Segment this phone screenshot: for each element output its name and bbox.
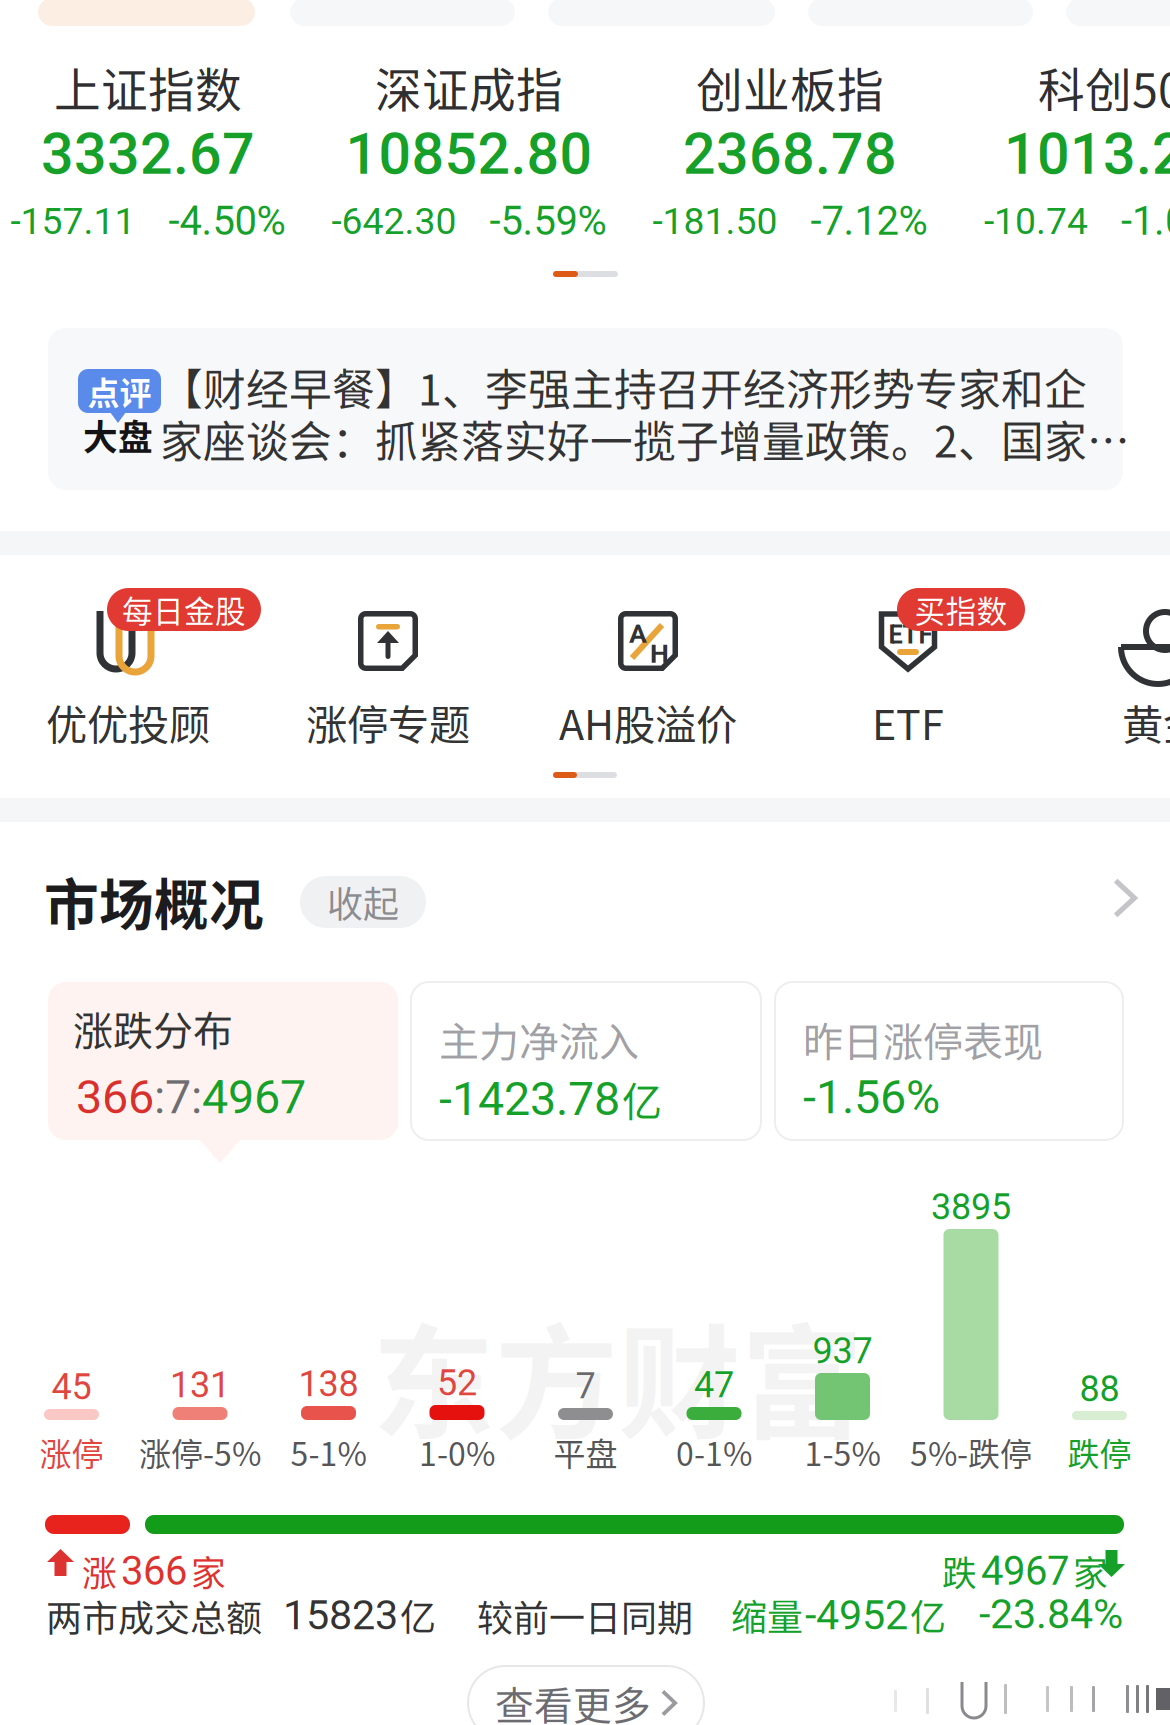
staticText: -157.11 [10,199,135,243]
staticText: 查看更多 [495,1675,651,1725]
staticText: AH股溢价 [559,692,737,752]
staticText: 主力净流入 [439,1010,639,1068]
staticText: 平盘 [553,1429,617,1475]
button[interactable]: ETF [758,570,1058,760]
staticText: 3895 [931,1186,1011,1228]
staticText: 【财经早餐】1、李强主持召开经济形势专家和企 [160,356,1087,418]
button[interactable]: 展开市场概况 [1097,870,1153,926]
staticText: 家座谈会：抓紧落实好一揽子增量政策。2、国家… [160,408,1130,470]
button[interactable]: 主力净流入 [411,982,761,1140]
staticText: 3332.67 [41,121,255,188]
button[interactable]: A [498,570,798,760]
staticText: 5-1% [290,1429,366,1475]
staticText: -1423.78 [439,1072,620,1126]
staticText: 47 [694,1364,734,1406]
staticText: 黄金 [1122,692,1170,752]
staticText: 市场概况 [44,861,264,940]
staticText: -4952 [805,1591,908,1639]
staticText: 优优投顾 [46,692,210,752]
staticText: 亿 [400,1589,436,1641]
button[interactable]: 科创50 [950,53,1170,233]
staticText: 涨停 [39,1429,103,1475]
button[interactable]: 点评 [48,328,1123,490]
staticText: 1-5% [804,1429,880,1475]
staticText: 大盘 [83,410,153,460]
staticText: 138 [298,1363,358,1405]
staticText: 较前一日同期 [477,1590,693,1642]
staticText: 东方财富 [372,1286,864,1464]
staticText: 家 [191,1546,226,1596]
staticText: 937 [812,1330,872,1372]
staticText: 深证成指 [375,53,563,121]
button[interactable]: 自选板块 [38,0,255,26]
staticText: 每日金股 [122,587,246,632]
staticText: 涨停-5% [139,1429,261,1475]
button[interactable]: 上证指数 [0,53,308,233]
button[interactable]: 创业板指 [629,53,950,233]
staticText: 1013.24 [1004,121,1170,188]
staticText: 亿 [910,1589,946,1641]
staticText: 366 [121,1548,187,1595]
staticText: 131 [170,1364,230,1406]
staticText: -10.74 [984,199,1088,243]
staticText: ETF [888,620,932,650]
button[interactable]: 黄金 [1013,570,1170,760]
staticText: 2368.78 [683,121,897,188]
staticText: 5%-跌停 [910,1429,1032,1475]
staticText: -1.56% [803,1070,940,1125]
staticText: 创业板指 [696,53,884,121]
staticText: -642.30 [331,199,456,243]
staticText: 买指数 [914,587,1007,632]
staticText: 4967 [981,1548,1069,1595]
staticText: 缩量 [731,1589,803,1641]
button[interactable]: 每日金股 [0,570,278,760]
staticText: -4.50% [168,198,285,245]
staticText: 涨 [82,1546,117,1596]
staticText: 收起 [327,876,399,928]
staticText: 点评 [87,368,151,414]
staticText: 涨停专题 [306,692,470,752]
button[interactable]: 深证成指 [308,53,629,233]
staticText: 两市成交总额 [46,1590,262,1642]
staticText: 10852.80 [345,121,592,188]
staticText: 52 [437,1362,477,1404]
staticText: 昨日涨停表现 [803,1010,1043,1068]
staticText: 跌停 [1067,1429,1131,1475]
staticText: ETF [872,692,944,752]
staticText: -181.50 [652,199,777,243]
staticText: 科创50 [1038,53,1170,121]
staticText: A [629,618,647,649]
staticText: 366 [76,1070,154,1125]
button[interactable]: 涨停专题 [238,570,538,760]
staticText: 4967 [202,1070,306,1125]
staticText: H [650,638,669,669]
button[interactable]: 昨日涨停表现 [775,982,1123,1140]
staticText: 15823 [283,1591,398,1639]
button[interactable]: 查看更多 [468,1666,704,1725]
staticText: 7 [575,1365,595,1407]
staticText: -1.05% [1121,198,1170,245]
staticText: :7: [154,1070,202,1125]
staticText: -7.12% [810,198,927,245]
staticText: 45 [51,1366,91,1408]
staticText: 88 [1079,1368,1119,1410]
staticText: 跌 [942,1546,977,1596]
staticText: 上证指数 [54,53,242,121]
staticText: 家 [1073,1546,1108,1596]
staticText: 亿 [622,1070,662,1128]
staticText: 涨跌分布 [73,999,233,1057]
staticText: -23.84% [979,1590,1123,1638]
button[interactable]: 涨跌分布 [48,982,398,1140]
button[interactable]: 收起 [300,876,426,928]
staticText: -5.59% [489,198,606,245]
staticText: 0-1% [676,1429,752,1475]
staticText: 1-0% [419,1429,495,1475]
